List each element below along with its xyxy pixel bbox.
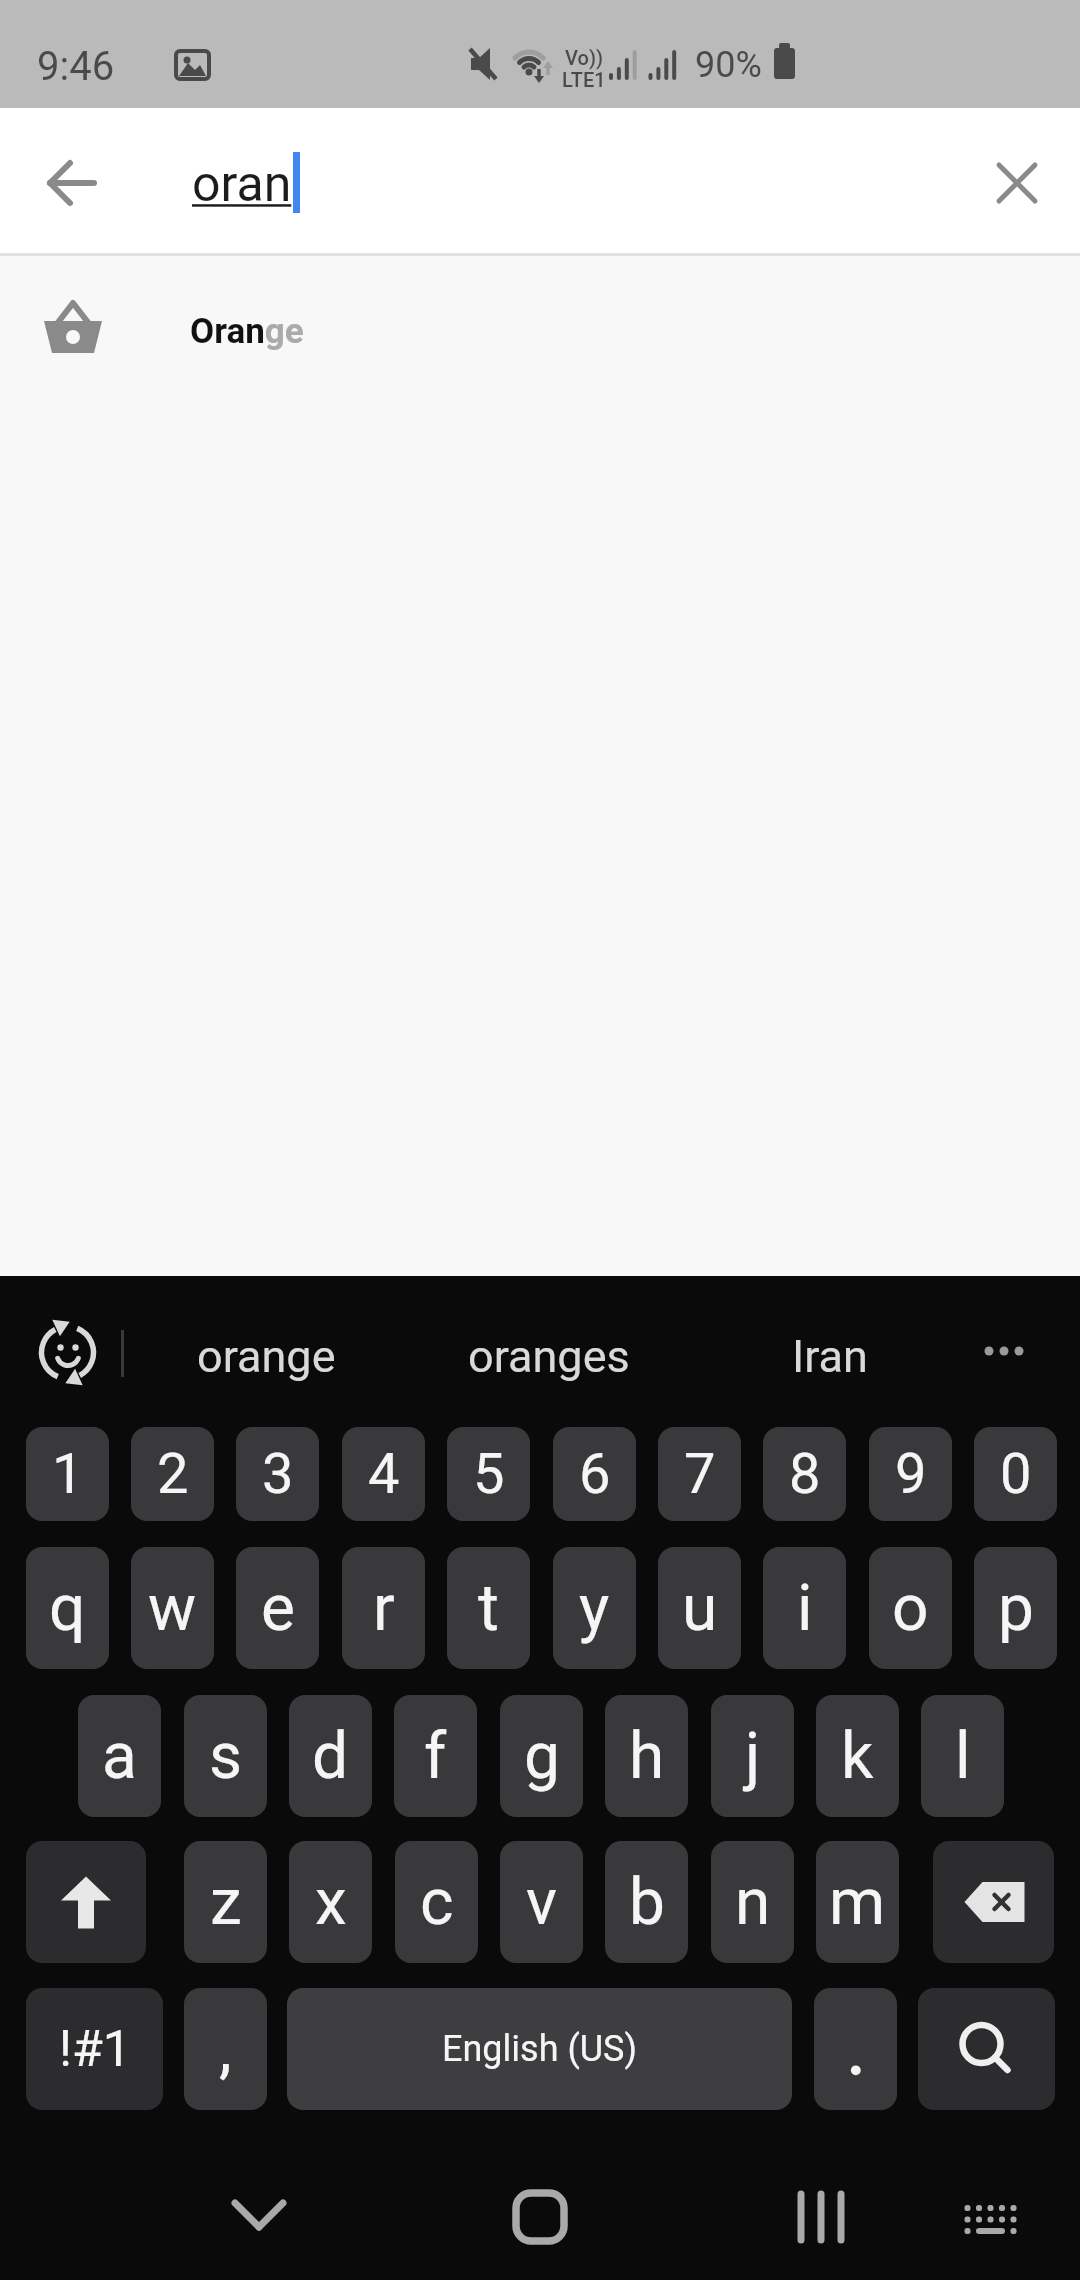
- staticText: t: [478, 1571, 499, 1646]
- button[interactable]: m: [816, 1841, 899, 1963]
- button[interactable]: b: [605, 1841, 688, 1963]
- staticText: LTE1: [562, 68, 606, 91]
- staticText: j: [745, 1719, 761, 1794]
- button[interactable]: [946, 2180, 1034, 2260]
- button[interactable]: f: [394, 1695, 477, 1817]
- staticText: d: [312, 1719, 349, 1794]
- staticText: n: [735, 1865, 771, 1940]
- staticText: 6: [579, 1441, 611, 1507]
- staticText: 2: [157, 1441, 189, 1507]
- button[interactable]: [918, 1988, 1055, 2110]
- button[interactable]: ,: [184, 1988, 267, 2110]
- staticText: r: [373, 1571, 395, 1646]
- staticText: x: [315, 1865, 347, 1940]
- staticText: Orange: [190, 311, 304, 352]
- staticText: 8: [789, 1441, 821, 1507]
- staticText: f: [424, 1719, 447, 1794]
- button[interactable]: [496, 2180, 584, 2260]
- staticText: g: [524, 1719, 560, 1794]
- button[interactable]: l: [921, 1695, 1004, 1817]
- button[interactable]: s: [184, 1695, 267, 1817]
- button[interactable]: g: [500, 1695, 583, 1817]
- button[interactable]: a: [78, 1695, 161, 1817]
- button[interactable]: !#1: [26, 1988, 163, 2110]
- button[interactable]: v: [500, 1841, 583, 1963]
- button[interactable]: p: [974, 1547, 1057, 1669]
- button[interactable]: r: [342, 1547, 425, 1669]
- button[interactable]: orange: [138, 1292, 394, 1420]
- staticText: 5: [473, 1441, 505, 1507]
- staticText: w: [148, 1571, 197, 1646]
- button[interactable]: t: [447, 1547, 530, 1669]
- button[interactable]: [777, 2180, 865, 2260]
- staticText: b: [629, 1865, 665, 1940]
- staticText: oranges: [468, 1330, 630, 1383]
- button[interactable]: q: [26, 1547, 109, 1669]
- button[interactable]: English (US): [287, 1988, 792, 2110]
- staticText: a: [102, 1719, 137, 1794]
- staticText: 4: [368, 1441, 400, 1507]
- button[interactable]: 7: [658, 1427, 741, 1521]
- staticText: 9: [895, 1441, 927, 1507]
- button[interactable]: 9: [869, 1427, 952, 1521]
- staticText: 3: [262, 1441, 294, 1507]
- staticText: c: [420, 1865, 454, 1940]
- staticText: Vo)): [565, 46, 604, 69]
- staticText: u: [682, 1571, 718, 1646]
- button[interactable]: oranges: [421, 1292, 677, 1420]
- staticText: i: [797, 1571, 813, 1646]
- staticText: 7: [684, 1441, 716, 1507]
- button[interactable]: c: [395, 1841, 478, 1963]
- button[interactable]: 3: [236, 1427, 319, 1521]
- staticText: y: [579, 1571, 610, 1646]
- button[interactable]: 6: [553, 1427, 636, 1521]
- button[interactable]: 4: [342, 1427, 425, 1521]
- button[interactable]: u: [658, 1547, 741, 1669]
- staticText: k: [841, 1719, 874, 1794]
- button[interactable]: h: [605, 1695, 688, 1817]
- staticText: 1: [52, 1441, 84, 1507]
- button[interactable]: 1: [26, 1427, 109, 1521]
- button[interactable]: w: [131, 1547, 214, 1669]
- button[interactable]: o: [869, 1547, 952, 1669]
- button[interactable]: Iran: [702, 1292, 958, 1420]
- button[interactable]: [814, 1988, 897, 2110]
- staticText: oran: [192, 155, 292, 214]
- staticText: ,: [219, 2012, 232, 2087]
- staticText: 90%: [695, 44, 762, 86]
- staticText: 9:46: [37, 43, 115, 90]
- button[interactable]: [0, 256, 1080, 406]
- staticText: orange: [197, 1330, 336, 1383]
- button[interactable]: 5: [447, 1427, 530, 1521]
- staticText: p: [998, 1571, 1034, 1646]
- button[interactable]: z: [184, 1841, 267, 1963]
- staticText: !#1: [59, 2020, 131, 2079]
- button[interactable]: [215, 2180, 303, 2260]
- staticText: s: [209, 1719, 243, 1794]
- staticText: q: [49, 1571, 86, 1646]
- staticText: z: [210, 1865, 242, 1940]
- button[interactable]: e: [236, 1547, 319, 1669]
- staticText: v: [526, 1865, 557, 1940]
- staticText: e: [261, 1571, 295, 1646]
- staticText: 0: [1000, 1441, 1032, 1507]
- staticText: Iran: [792, 1330, 868, 1383]
- staticText: English (US): [442, 2028, 637, 2070]
- button[interactable]: [30, 141, 114, 225]
- button[interactable]: d: [289, 1695, 372, 1817]
- button[interactable]: i: [763, 1547, 846, 1669]
- button[interactable]: [975, 141, 1059, 225]
- staticText: o: [892, 1571, 929, 1646]
- button[interactable]: x: [289, 1841, 372, 1963]
- button[interactable]: 0: [974, 1427, 1057, 1521]
- button[interactable]: j: [711, 1695, 794, 1817]
- button[interactable]: y: [553, 1547, 636, 1669]
- button[interactable]: [26, 1841, 146, 1963]
- button[interactable]: k: [816, 1695, 899, 1817]
- staticText: h: [629, 1719, 665, 1794]
- button[interactable]: [933, 1841, 1054, 1963]
- button[interactable]: n: [711, 1841, 794, 1963]
- button[interactable]: 8: [763, 1427, 846, 1521]
- staticText: l: [955, 1719, 971, 1794]
- button[interactable]: 2: [131, 1427, 214, 1521]
